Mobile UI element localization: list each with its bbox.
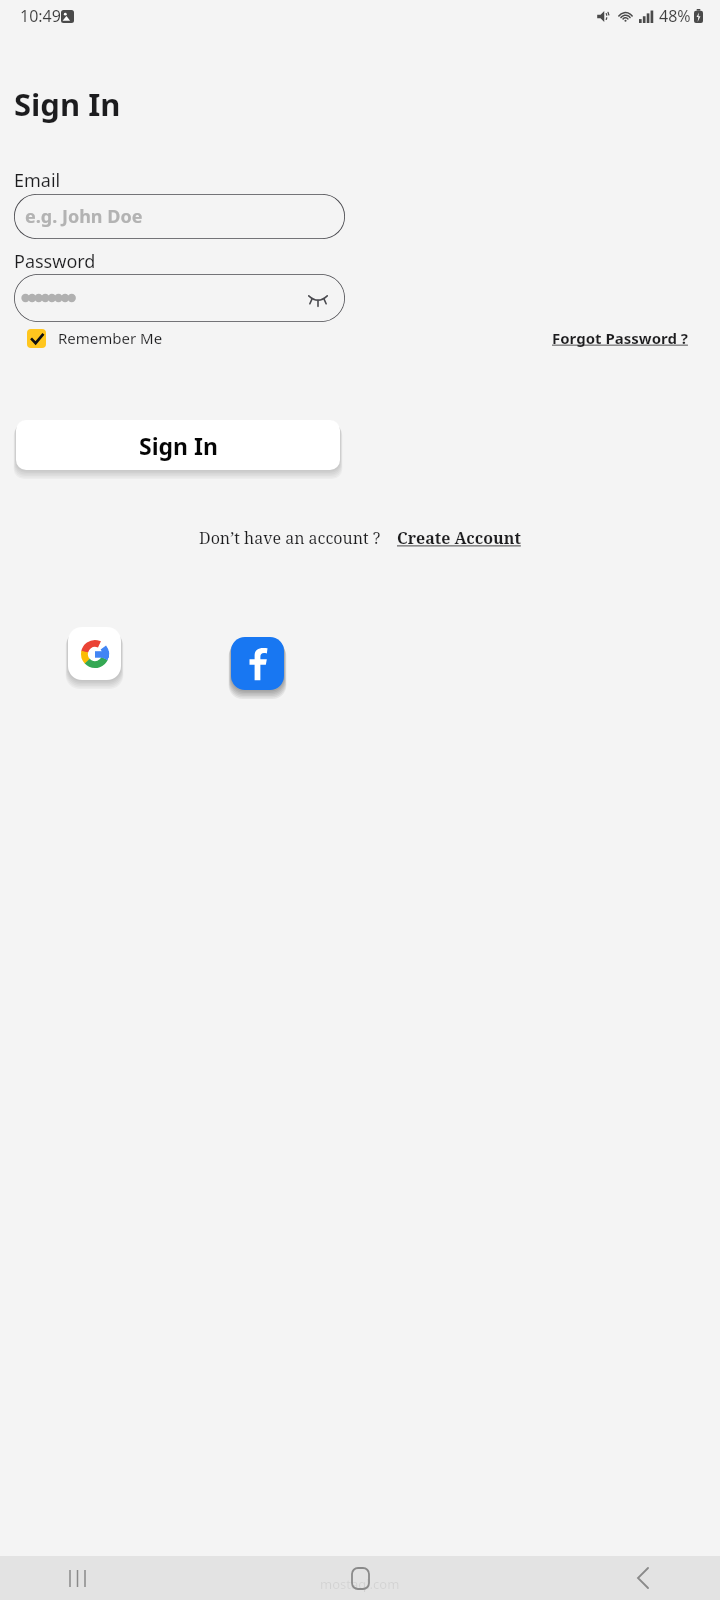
staticText: Password [14, 249, 96, 274]
button[interactable]: Sign in with Google [68, 627, 121, 680]
button[interactable]: Remember Me [27, 328, 163, 348]
staticText: e.g. John Doe [25, 204, 143, 229]
staticText: Create Account [397, 527, 521, 549]
staticText: Sign In [14, 83, 121, 125]
button[interactable]: Create Account [397, 527, 521, 549]
button[interactable]: Sign In [16, 420, 340, 470]
button[interactable]: Home [341, 1559, 379, 1597]
button[interactable]: Recent apps [60, 1561, 94, 1595]
staticText: 10:49 [20, 5, 61, 27]
button[interactable]: Back [626, 1561, 660, 1595]
staticText: Forgot Password ? [552, 328, 688, 348]
staticText: Email [14, 168, 61, 193]
button[interactable]: e.g. John Doe [14, 194, 345, 239]
staticText: Remember Me [58, 328, 163, 348]
button[interactable]: Show password [14, 274, 345, 322]
staticText: Sign In [139, 430, 218, 461]
staticText: mostaql.com [320, 1575, 400, 1593]
button[interactable]: Show password [305, 285, 331, 311]
button[interactable]: Forgot Password ? [552, 328, 688, 348]
staticText: Don’t have an account ? [199, 527, 381, 549]
button[interactable]: Sign in with Facebook [231, 637, 284, 690]
staticText: 48% [659, 5, 691, 27]
